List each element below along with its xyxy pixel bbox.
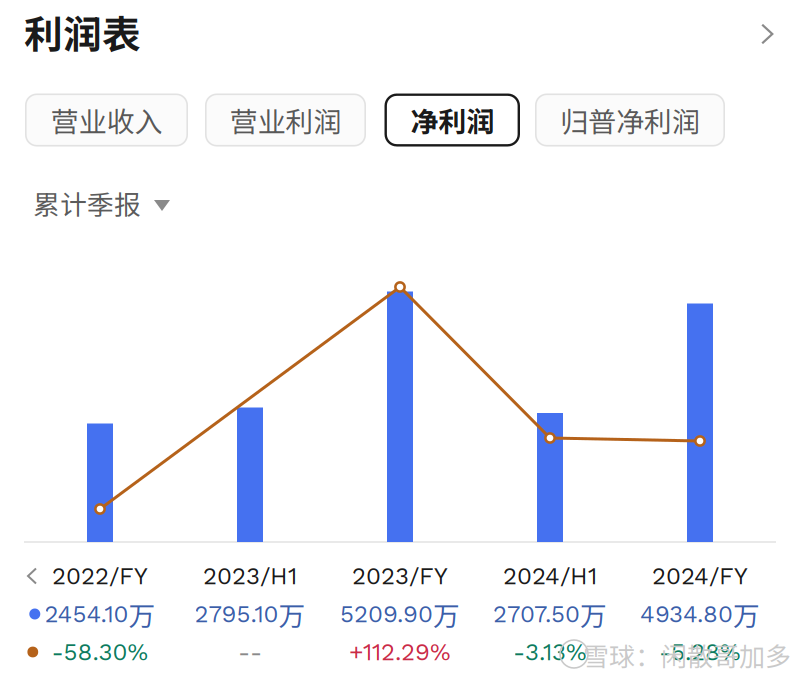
- staticText: -3.13%: [513, 638, 587, 666]
- staticText: 万: [580, 595, 607, 633]
- staticText: 归普净利润: [560, 100, 700, 140]
- button[interactable]: 营业收入: [25, 93, 188, 146]
- staticText: 净利润: [410, 100, 494, 140]
- staticText: 累计季报: [33, 184, 141, 222]
- button[interactable]: 营业利润: [205, 93, 366, 146]
- staticText: 2024/FY: [652, 562, 748, 590]
- staticText: 2023/H1: [203, 562, 297, 590]
- staticText: 营业收入: [50, 100, 162, 140]
- staticText: 雪球：闲散哥加多: [583, 636, 791, 674]
- button[interactable]: 归普净利润: [535, 93, 725, 146]
- staticText: 2454.10: [44, 600, 128, 628]
- staticText: 2795.10: [194, 600, 278, 628]
- button[interactable]: 净利润: [384, 93, 520, 146]
- staticText: 5209.90: [340, 600, 433, 628]
- staticText: 万: [733, 595, 760, 633]
- staticText: 2022/FY: [52, 562, 148, 590]
- staticText: 万: [433, 595, 460, 633]
- button[interactable]: 累计季报: [0, 180, 800, 226]
- staticText: --: [238, 638, 262, 666]
- staticText: 2024/H1: [503, 562, 597, 590]
- button[interactable]: Previous periods: [14, 557, 50, 595]
- staticText: 利润表: [24, 4, 141, 60]
- staticText: 万: [128, 595, 155, 633]
- staticText: 4934.80: [640, 600, 733, 628]
- button[interactable]: 利润表: [0, 0, 800, 64]
- staticText: 营业利润: [229, 100, 341, 140]
- staticText: 2707.50: [493, 600, 580, 628]
- staticText: -58.30%: [51, 638, 148, 666]
- staticText: 2023/FY: [352, 562, 448, 590]
- staticText: +112.29%: [349, 638, 451, 666]
- staticText: -5.28%: [659, 638, 741, 666]
- staticText: 万: [278, 595, 305, 633]
